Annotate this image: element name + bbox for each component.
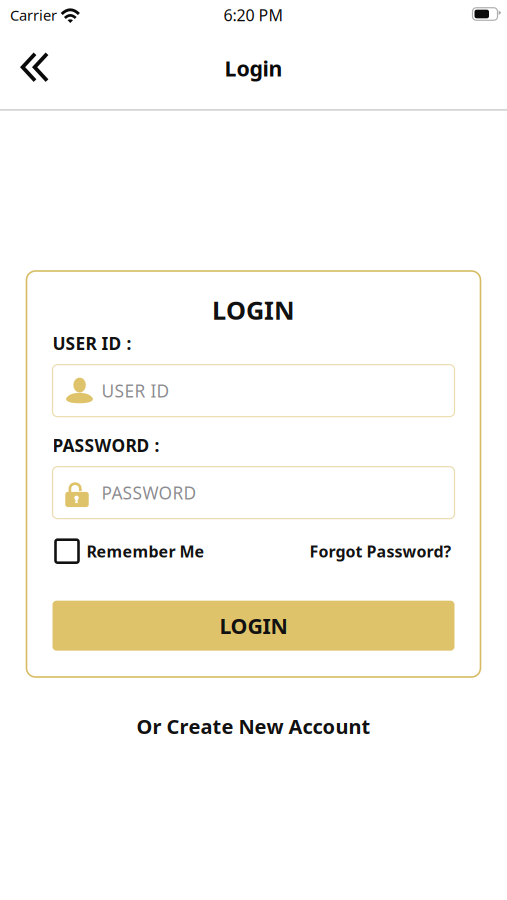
staticText: LOGIN bbox=[219, 611, 287, 640]
staticText: PASSWORD bbox=[101, 481, 196, 504]
button[interactable]: Or Create New Account bbox=[124, 705, 382, 748]
staticText: 6:20 PM bbox=[223, 4, 283, 26]
staticText: PASSWORD : bbox=[52, 434, 159, 457]
button[interactable]: USER ID bbox=[52, 365, 454, 417]
button[interactable]: Remember Me bbox=[55, 540, 204, 563]
button[interactable]: LOGIN bbox=[52, 601, 454, 651]
staticText: USER ID bbox=[101, 379, 169, 402]
staticText: USER ID : bbox=[52, 332, 131, 355]
button[interactable]: Back bbox=[12, 46, 58, 94]
staticText: Or Create New Account bbox=[136, 713, 370, 740]
staticText: Login bbox=[224, 54, 282, 82]
staticText: Forgot Password? bbox=[309, 541, 451, 562]
button[interactable]: PASSWORD bbox=[52, 467, 454, 519]
button[interactable]: Forgot Password? bbox=[309, 541, 451, 562]
staticText: Carrier bbox=[10, 5, 57, 25]
staticText: LOGIN bbox=[212, 293, 295, 327]
staticText: Remember Me bbox=[86, 541, 204, 562]
